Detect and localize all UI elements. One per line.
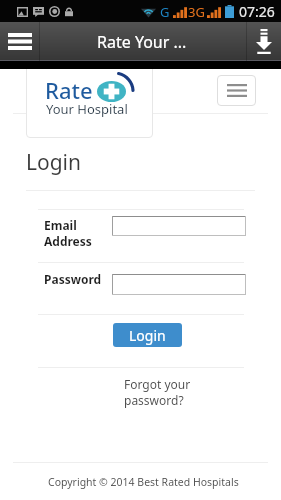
staticText: 3G xyxy=(188,3,205,21)
staticText: Rate xyxy=(45,75,93,105)
staticText: Copyright © 2014 Best Rated Hospitals xyxy=(48,475,239,489)
staticText: Password xyxy=(44,271,102,287)
staticText: Forgot your password? xyxy=(124,376,191,408)
button[interactable]: Forgot your password? xyxy=(124,376,191,408)
staticText: Rate Your ... xyxy=(97,31,187,53)
staticText: Login xyxy=(26,148,82,177)
staticText: Your Hospital xyxy=(46,100,128,118)
staticText: 07:26 xyxy=(239,2,275,21)
staticText: Login xyxy=(129,326,166,345)
button[interactable]: Password field xyxy=(112,274,246,295)
button[interactable]: Login xyxy=(113,323,182,347)
staticText: Email Address xyxy=(44,217,92,250)
staticText: G xyxy=(160,3,170,21)
button[interactable]: Download xyxy=(247,22,281,61)
button[interactable]: Email Address field xyxy=(112,216,246,236)
button[interactable]: Toggle navigation xyxy=(217,75,256,106)
button[interactable]: Menu xyxy=(0,22,39,61)
